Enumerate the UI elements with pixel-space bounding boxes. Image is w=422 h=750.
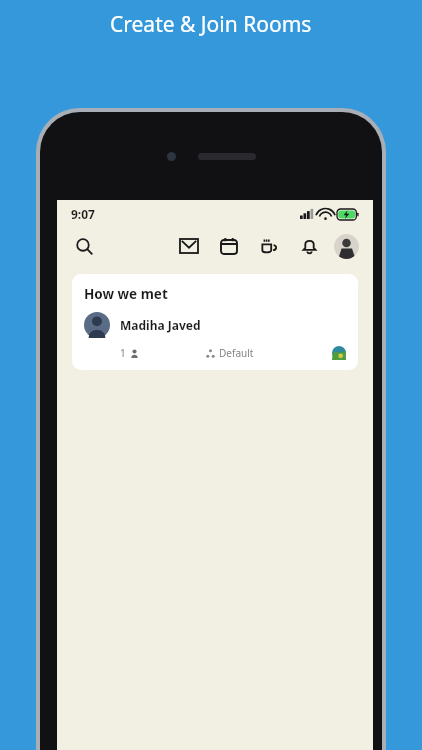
staticText: Madiha Javed <box>120 317 201 333</box>
button[interactable]: Notifications <box>296 233 322 259</box>
staticText: How we met <box>84 285 168 303</box>
staticText: Default <box>219 346 254 360</box>
button[interactable]: Calendar <box>216 233 242 259</box>
staticText: Create & Join Rooms <box>110 10 312 39</box>
button[interactable]: Search <box>71 233 97 259</box>
button[interactable]: How we met <box>72 274 358 370</box>
button[interactable]: Mail <box>176 233 202 259</box>
staticText: 9:07 <box>71 206 95 222</box>
button[interactable]: Profile <box>334 234 359 259</box>
button[interactable]: Coffee <box>256 233 282 259</box>
staticText: 1 <box>120 346 126 360</box>
